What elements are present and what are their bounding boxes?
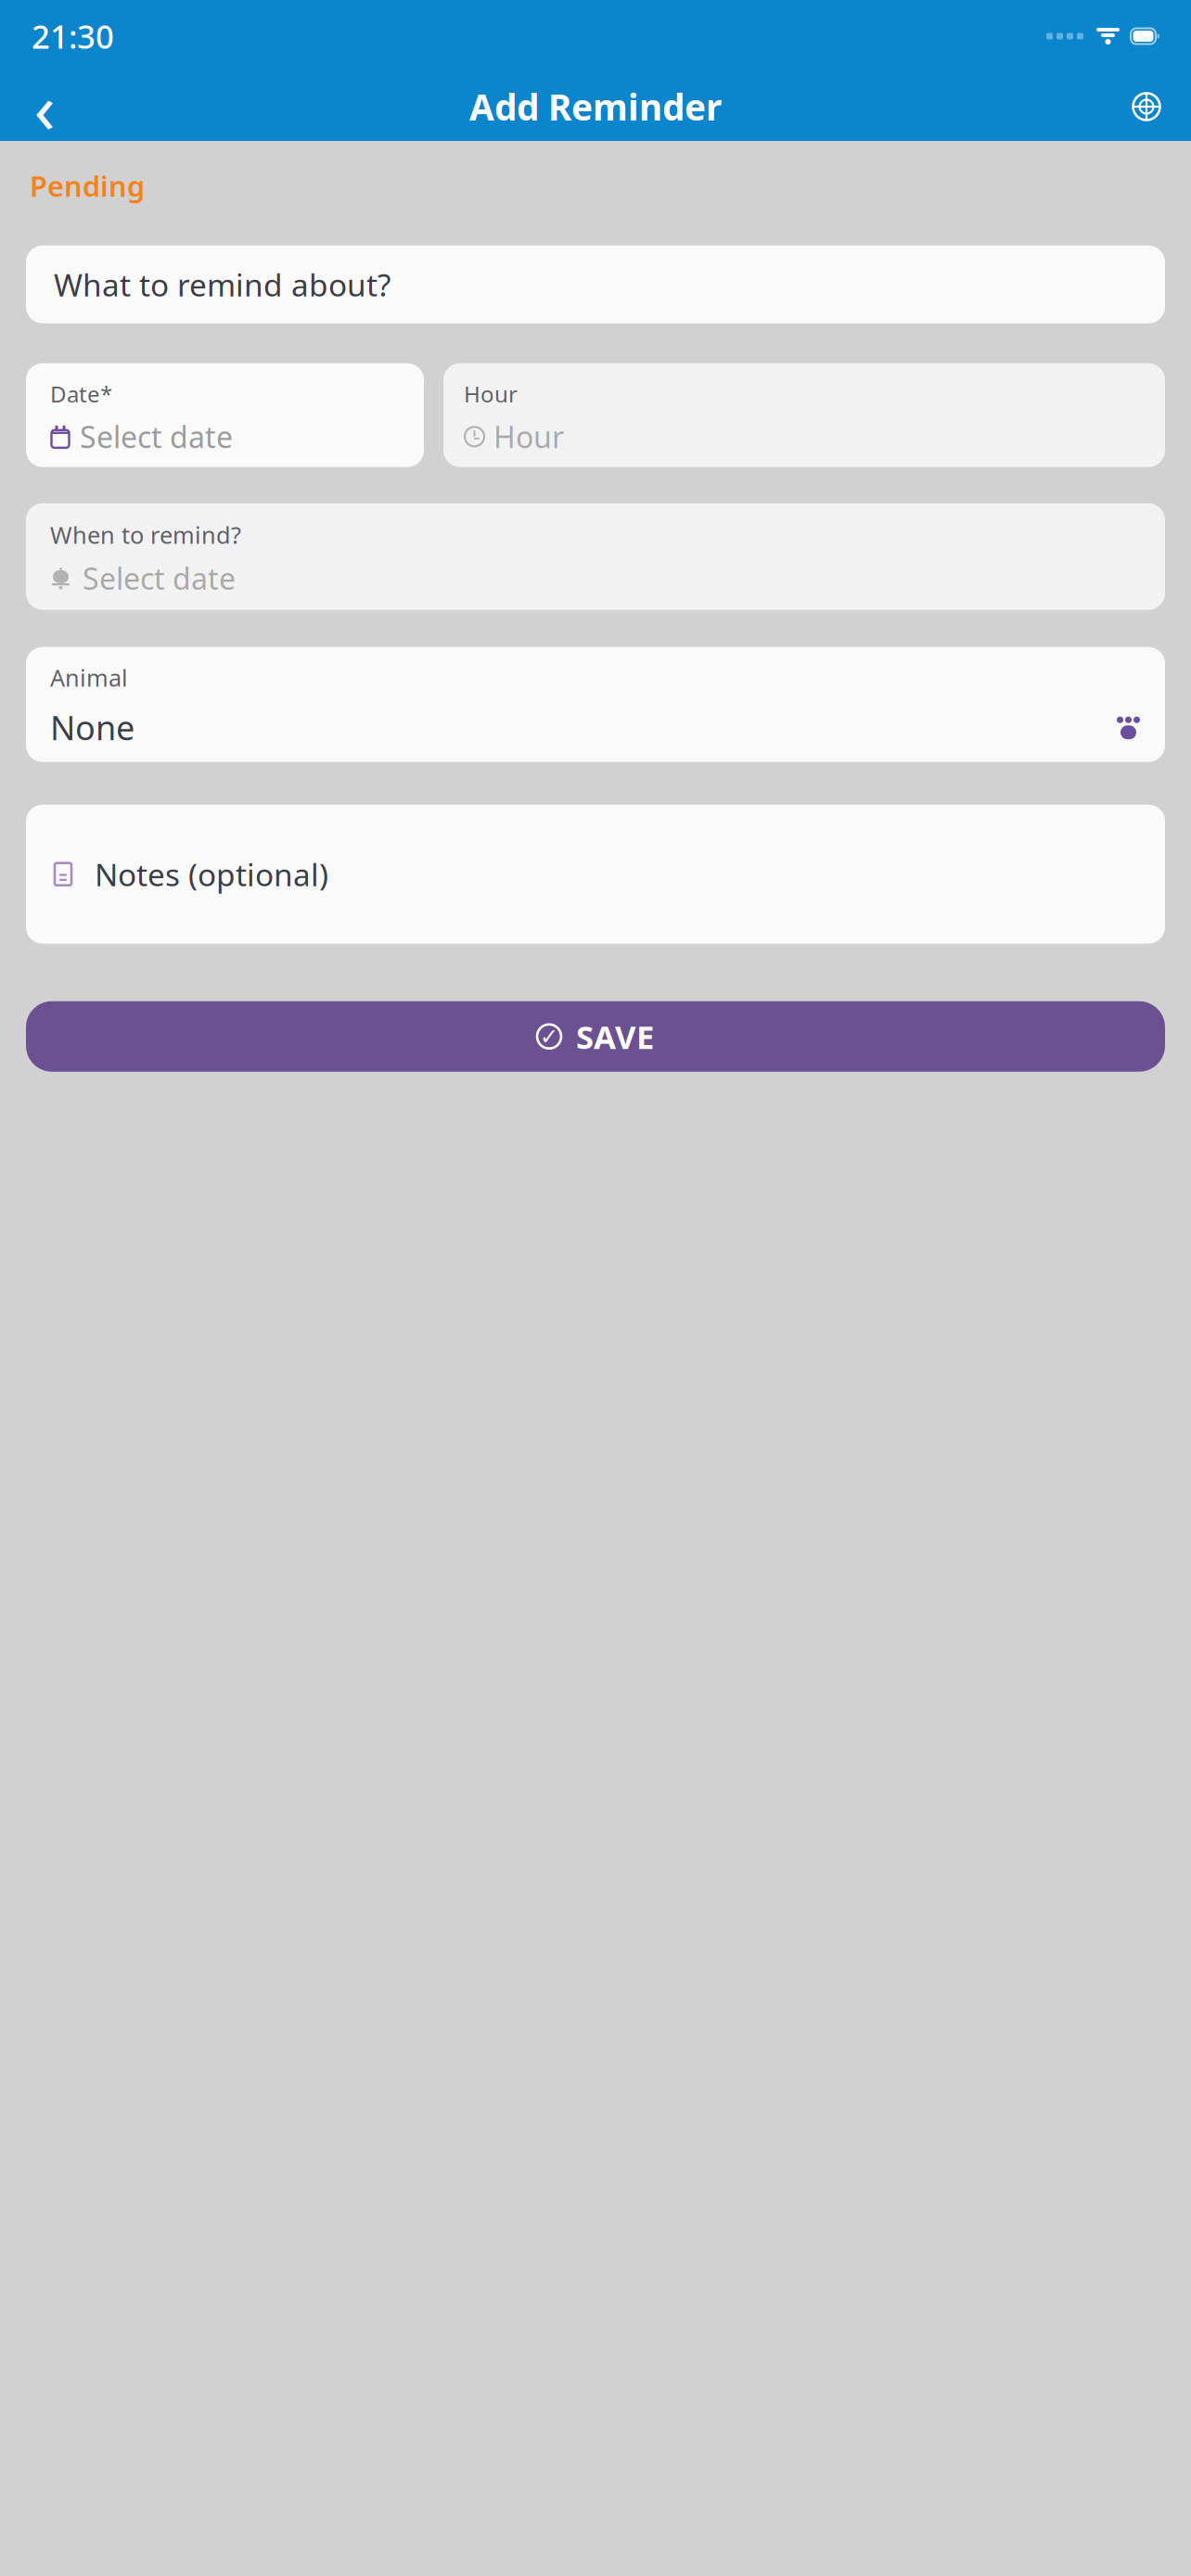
button[interactable]: Date* [26, 363, 424, 467]
staticText: ✓ [540, 1024, 558, 1049]
staticText: Add Reminder [469, 83, 722, 130]
staticText: When to remind? [50, 519, 241, 550]
button[interactable]: Hour [443, 363, 1165, 467]
staticText: Notes (optional) [95, 854, 328, 895]
button[interactable]: When to remind? [26, 503, 1165, 610]
staticText: Select date [83, 559, 236, 598]
button[interactable]: ✓ [26, 1001, 1165, 1072]
staticText: Pending [30, 167, 145, 205]
staticText: Hour [493, 417, 564, 456]
staticText: Hour [464, 379, 518, 409]
staticText: Animal [50, 662, 128, 693]
staticText: None [50, 705, 134, 749]
staticText: SAVE [576, 1015, 654, 1058]
staticText: Select date [80, 417, 233, 456]
staticText: Date* [50, 379, 112, 409]
button[interactable]: Back [17, 78, 72, 135]
staticText: 21:30 [32, 15, 114, 57]
button[interactable]: What to remind about? [26, 245, 1165, 323]
button[interactable]: Language [1119, 78, 1174, 135]
staticText: ‹ [34, 61, 55, 153]
button[interactable]: Animal [26, 647, 1165, 762]
button[interactable]: Notes (optional) [26, 805, 1165, 944]
staticText: What to remind about? [54, 264, 391, 305]
